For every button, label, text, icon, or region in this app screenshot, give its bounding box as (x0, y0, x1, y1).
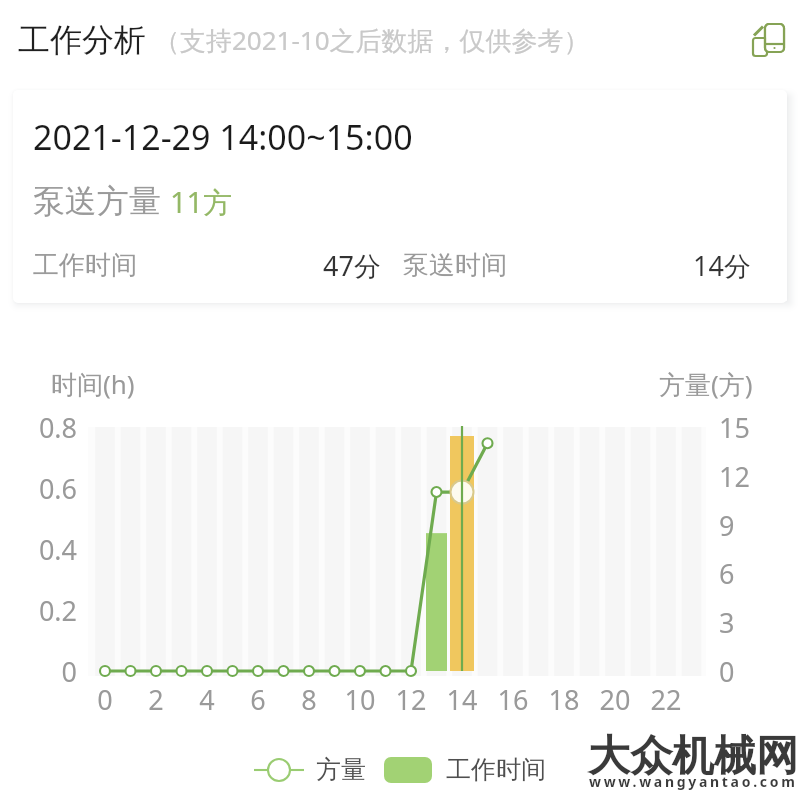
staticText: 0 (80, 681, 130, 718)
staticText: 6 (233, 681, 283, 718)
staticText: 0.2 (24, 592, 77, 629)
button[interactable]: 2021-12-29 14:00~15:00 (13, 90, 787, 303)
staticText: 大众机械网 (588, 730, 798, 783)
staticText: 18 (539, 681, 589, 718)
staticText: 14 (437, 681, 487, 718)
staticText: 6 (719, 555, 763, 592)
button[interactable]: Device report (740, 12, 796, 68)
staticText: 工作时间 (33, 249, 137, 282)
staticText: 16 (488, 681, 538, 718)
staticText: 0.6 (24, 470, 77, 507)
staticText: 11方 (170, 182, 233, 222)
staticText: 8 (284, 681, 334, 718)
staticText: 方量 (316, 754, 366, 785)
staticText: 时间(h) (51, 366, 135, 402)
staticText: 方量(方) (659, 366, 753, 402)
staticText: 工作时间 (446, 754, 546, 785)
staticText: 9 (719, 507, 763, 544)
button[interactable]: 工作时间 (384, 754, 546, 785)
staticText: 工作分析 (18, 20, 146, 60)
staticText: 4 (182, 681, 232, 718)
staticText: 12 (386, 681, 436, 718)
staticText: 泵送时间 (403, 249, 507, 282)
staticText: 0.4 (24, 531, 77, 568)
staticText: 3 (719, 604, 763, 641)
staticText: 14分 (693, 247, 751, 284)
staticText: 22 (641, 681, 691, 718)
button[interactable]: 方量 (254, 754, 366, 785)
staticText: 20 (590, 681, 640, 718)
staticText: 12 (719, 458, 763, 495)
staticText: 15 (719, 409, 763, 446)
staticText: （支持2021-10之后数据，仅供参考） (154, 22, 590, 58)
staticText: 泵送方量 (33, 178, 170, 222)
staticText: 0 (24, 653, 77, 690)
staticText: 0 (719, 653, 763, 690)
staticText: 47分 (323, 247, 381, 284)
staticText: 0.8 (24, 409, 77, 446)
staticText: 2021-12-29 14:00~15:00 (33, 114, 413, 160)
staticText: www.wangyantao.com (589, 772, 798, 791)
staticText: 2 (131, 681, 181, 718)
staticText: 10 (335, 681, 385, 718)
